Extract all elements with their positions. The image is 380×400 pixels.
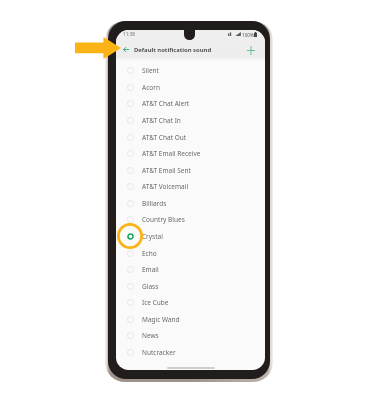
staticText: News [142, 331, 159, 340]
staticText: Nutcracker [142, 348, 176, 357]
button[interactable]: AT&T Chat Out [116, 129, 265, 146]
staticText: Glass [142, 282, 159, 291]
button[interactable]: Glass [116, 278, 265, 295]
button[interactable]: Email [116, 261, 265, 278]
button[interactable]: Country Blues [116, 211, 265, 228]
button[interactable]: News [116, 327, 265, 344]
staticText: Billiards [142, 199, 167, 208]
staticText: Acorn [142, 83, 160, 92]
staticText: AT&T Chat In [142, 116, 181, 125]
staticText: AT&T Chat Alert [142, 99, 190, 108]
staticText: AT&T Email Receive [142, 149, 201, 158]
staticText: 11:38 [123, 31, 136, 37]
staticText: 100% [242, 32, 255, 38]
button[interactable]: Magic Wand [116, 311, 265, 328]
button[interactable]: AT&T Chat Alert [116, 95, 265, 112]
button[interactable]: Acorn [116, 79, 265, 96]
staticText: Echo [142, 249, 157, 258]
button[interactable]: AT&T Chat In [116, 112, 265, 129]
button[interactable]: Silent [116, 62, 265, 79]
button[interactable]: Nutcracker [116, 344, 265, 361]
button[interactable]: AT&T Email Sent [116, 162, 265, 179]
button[interactable]: AT&T Voicemail [116, 178, 265, 195]
button[interactable]: Billiards [116, 195, 265, 212]
staticText: Silent [142, 66, 159, 75]
staticText: Default notification sound [134, 46, 212, 54]
staticText: AT&T Chat Out [142, 133, 187, 142]
staticText: Magic Wand [142, 315, 180, 324]
button[interactable]: Navigate up [118, 41, 134, 57]
staticText: Email [142, 265, 159, 274]
staticText: Country Blues [142, 215, 185, 224]
button[interactable]: Echo [116, 245, 265, 262]
button[interactable]: Add ringtone [243, 42, 259, 58]
staticText: AT&T Voicemail [142, 182, 189, 191]
button[interactable]: Ice Cube [116, 294, 265, 311]
staticText: Ice Cube [142, 298, 169, 307]
button[interactable]: AT&T Email Receive [116, 145, 265, 162]
staticText: Crystal [142, 232, 163, 241]
staticText: AT&T Email Sent [142, 166, 191, 175]
button[interactable]: Crystal [116, 228, 265, 245]
